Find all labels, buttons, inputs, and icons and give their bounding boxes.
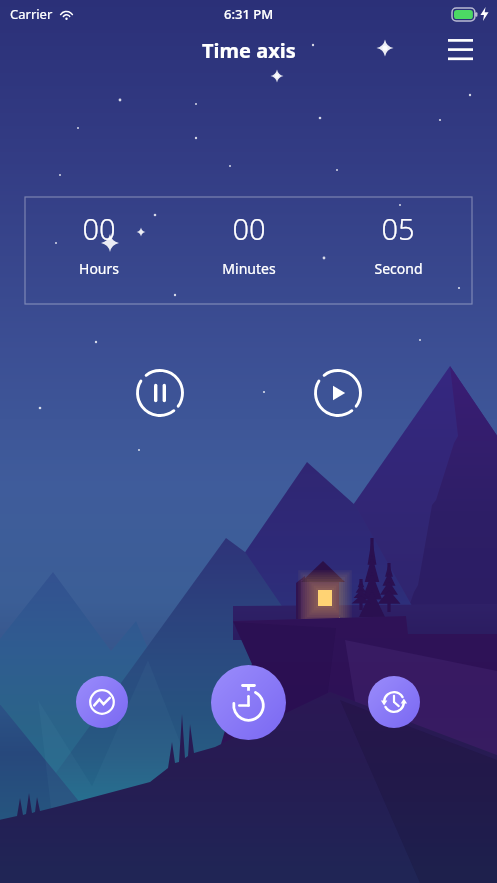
staticText: Second xyxy=(374,259,423,278)
button[interactable]: History xyxy=(368,676,420,728)
staticText: 00 xyxy=(232,209,266,248)
button[interactable]: Stopwatch xyxy=(211,665,286,740)
button[interactable]: Statistics xyxy=(76,676,128,728)
button[interactable]: Play xyxy=(311,366,365,420)
staticText: 00 xyxy=(82,209,116,248)
staticText: Minutes xyxy=(222,259,276,278)
staticText: 6:31 PM xyxy=(224,5,274,23)
staticText: 05 xyxy=(381,209,415,248)
button[interactable]: Pause xyxy=(133,366,187,420)
button[interactable]: Menu xyxy=(441,31,480,68)
staticText: Carrier xyxy=(10,5,53,23)
staticText: Hours xyxy=(79,259,119,278)
staticText: Time axis xyxy=(202,37,296,64)
